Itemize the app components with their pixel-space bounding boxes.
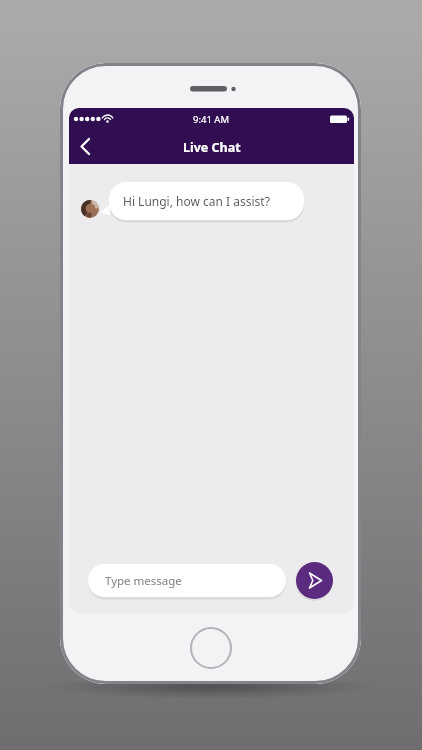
- staticText: 9:41 AM: [193, 113, 230, 126]
- button[interactable]: [296, 562, 333, 599]
- button[interactable]: Type message: [88, 564, 286, 597]
- staticText: Live Chat: [183, 139, 241, 156]
- staticText: Type message: [105, 573, 182, 589]
- staticText: Hi Lungi, how can I assist?: [123, 193, 270, 209]
- button[interactable]: [73, 134, 101, 160]
